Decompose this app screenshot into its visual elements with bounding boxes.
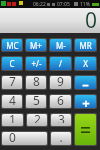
button[interactable]: 8 xyxy=(26,76,46,89)
button[interactable]: + xyxy=(75,95,96,108)
staticText: +/- xyxy=(31,58,42,69)
staticText: C xyxy=(9,58,15,69)
staticText: . xyxy=(59,132,63,142)
staticText: 0 xyxy=(85,6,98,31)
staticText: MC xyxy=(6,40,19,51)
staticText: 4 xyxy=(9,95,16,105)
button[interactable]: MC xyxy=(2,39,22,51)
button[interactable]: 1 xyxy=(2,114,23,126)
button[interactable]: 9 xyxy=(50,76,71,89)
staticText: + xyxy=(82,95,90,107)
button[interactable]: – xyxy=(75,76,96,89)
button[interactable]: X xyxy=(75,57,96,70)
button[interactable]: 4 xyxy=(2,95,22,108)
button[interactable]: 2 xyxy=(27,114,47,126)
staticText: 7 xyxy=(9,76,16,86)
button[interactable]: 6 xyxy=(50,95,71,108)
staticText: 2 xyxy=(34,114,41,123)
button[interactable]: +/- xyxy=(26,57,46,70)
staticText: 07:05 xyxy=(57,1,70,8)
staticText: 3 xyxy=(58,114,65,123)
staticText: X xyxy=(83,58,88,69)
staticText: 1 xyxy=(9,114,16,123)
button[interactable]: 5 xyxy=(26,95,46,108)
staticText: M+ xyxy=(30,40,42,51)
other: Equals xyxy=(81,127,90,133)
staticText: 9 xyxy=(57,76,64,86)
staticText: 8 xyxy=(33,76,40,86)
button[interactable]: 0 xyxy=(2,132,47,145)
staticText: – xyxy=(82,76,89,88)
button[interactable]: M+ xyxy=(26,39,46,51)
button[interactable]: MR xyxy=(75,39,96,51)
staticText: MR xyxy=(79,40,92,51)
staticText: 0 xyxy=(9,132,16,142)
button[interactable]: M- xyxy=(50,39,71,51)
button[interactable]: 3 xyxy=(51,114,71,126)
button[interactable]: 7 xyxy=(2,76,22,89)
staticText: / xyxy=(59,58,62,69)
staticText: 06:22 xyxy=(33,1,46,8)
staticText: 5 xyxy=(33,95,40,105)
button[interactable]: . xyxy=(51,132,71,145)
staticText: 6 xyxy=(57,95,64,105)
staticText: M- xyxy=(56,40,66,51)
button[interactable]: / xyxy=(50,57,71,70)
staticText: 11% xyxy=(80,1,90,8)
button[interactable]: C xyxy=(2,57,22,70)
button[interactable]: Equals xyxy=(75,114,96,145)
